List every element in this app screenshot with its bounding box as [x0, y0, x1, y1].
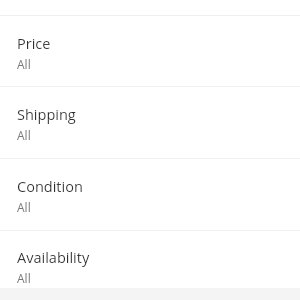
staticText: All [17, 127, 31, 143]
staticText: Condition [17, 177, 83, 197]
staticText: All [17, 199, 31, 215]
staticText: Availability [17, 248, 90, 268]
button[interactable]: Condition [0, 160, 300, 230]
staticText: Shipping [17, 105, 76, 125]
staticText: Price [17, 34, 51, 54]
staticText: All [17, 56, 31, 72]
staticText: All [17, 270, 31, 286]
button[interactable]: Availability [0, 231, 300, 288]
button[interactable]: Shipping [0, 88, 300, 158]
button[interactable]: Price [0, 17, 300, 86]
